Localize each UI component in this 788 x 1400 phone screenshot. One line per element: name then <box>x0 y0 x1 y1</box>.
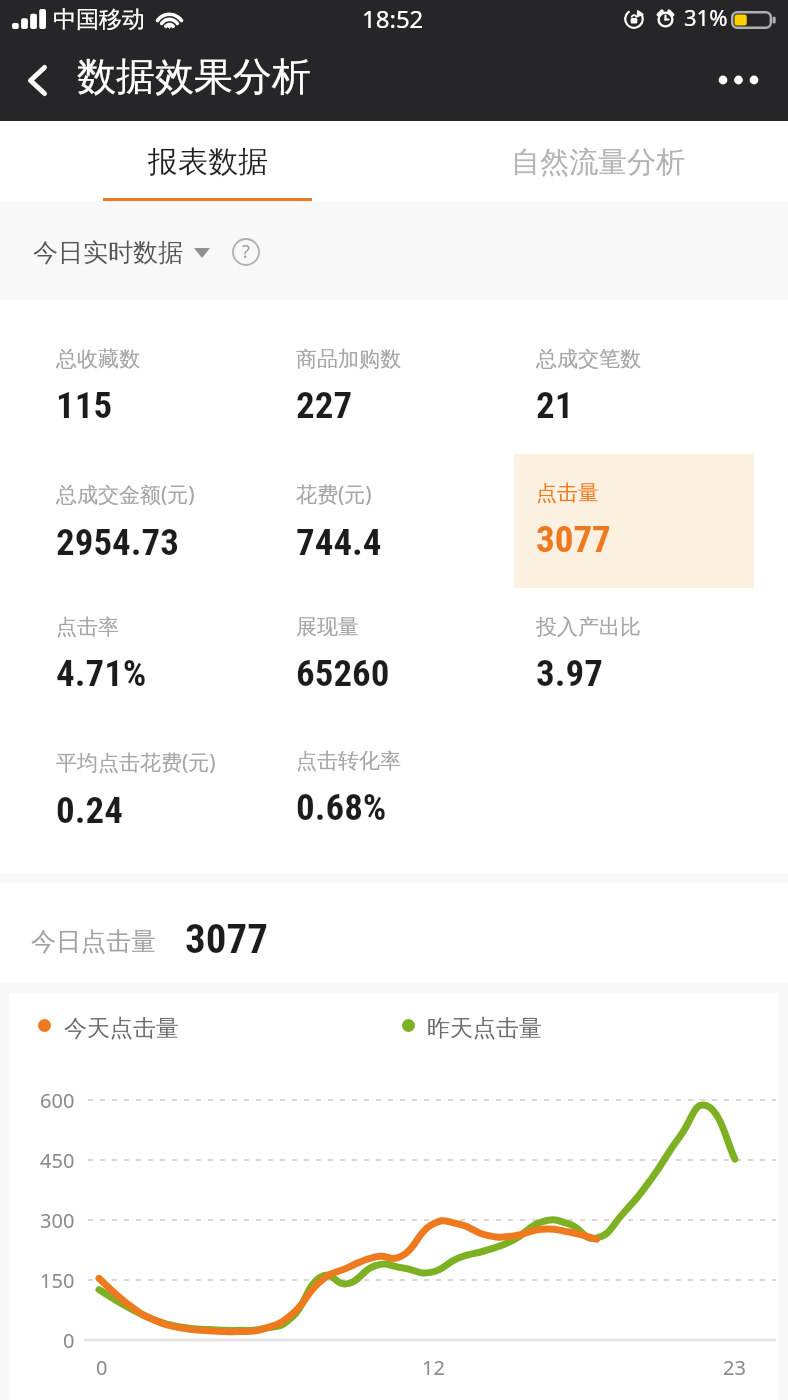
button[interactable]: 商品加购数 <box>274 320 514 454</box>
button[interactable]: 报表数据 <box>0 121 394 201</box>
staticText: 点击率 <box>56 614 119 640</box>
staticText: 自然流量分析 <box>511 144 685 181</box>
staticText: 总成交金额(元) <box>56 480 195 509</box>
staticText: 3.97 <box>536 652 603 695</box>
staticText: 投入产出比 <box>536 614 641 640</box>
staticText: 31% <box>684 2 728 32</box>
button[interactable]: Back <box>0 52 64 116</box>
staticText: 0.68% <box>296 786 387 829</box>
button[interactable]: 平均点击花费(元) <box>34 722 274 856</box>
staticText: 平均点击花费(元) <box>56 748 216 777</box>
staticText: 商品加购数 <box>296 346 401 372</box>
button[interactable]: 自然流量分析 <box>394 121 788 201</box>
staticText: 今日点击量 <box>31 926 156 957</box>
button[interactable]: 展现量 <box>274 588 514 722</box>
staticText: 点击量 <box>536 480 599 506</box>
staticText: 昨天点击量 <box>427 1014 542 1043</box>
staticText: 0 <box>96 1354 108 1381</box>
button[interactable]: 花费(元) <box>274 454 514 588</box>
staticText: 115 <box>56 384 113 427</box>
staticText: 数据效果分析 <box>77 52 311 101</box>
button[interactable]: 总成交笔数 <box>514 320 754 454</box>
staticText: 600 <box>40 1087 75 1114</box>
staticText: 3077 <box>185 915 268 963</box>
staticText: 0.24 <box>56 789 123 832</box>
staticText: 展现量 <box>296 614 359 640</box>
staticText: 23 <box>723 1354 746 1381</box>
button[interactable]: 今日实时数据 <box>33 237 210 268</box>
staticText: 21 <box>536 384 574 427</box>
button[interactable]: 点击量 <box>514 454 754 588</box>
staticText: 点击转化率 <box>296 748 401 774</box>
staticText: 2954.73 <box>56 521 179 564</box>
button[interactable]: 投入产出比 <box>514 588 754 722</box>
button[interactable]: More options <box>688 52 760 108</box>
staticText: 4.71% <box>56 652 147 695</box>
button[interactable]: 点击转化率 <box>274 722 514 856</box>
button[interactable]: 总成交金额(元) <box>34 454 274 588</box>
staticText: 65260 <box>296 652 390 695</box>
staticText: 300 <box>40 1207 75 1234</box>
staticText: 今日实时数据 <box>33 237 183 268</box>
staticText: 总成交笔数 <box>536 346 641 372</box>
staticText: 12 <box>422 1354 445 1381</box>
staticText: 3077 <box>536 518 611 561</box>
staticText: ? <box>242 239 250 264</box>
staticText: 450 <box>40 1147 75 1174</box>
staticText: 今天点击量 <box>64 1014 179 1043</box>
staticText: 18:52 <box>362 2 424 35</box>
staticText: 总收藏数 <box>56 346 140 372</box>
staticText: 中国移动 <box>53 5 145 34</box>
staticText: 744.4 <box>296 521 382 564</box>
staticText: 150 <box>40 1267 75 1294</box>
staticText: 花费(元) <box>296 480 372 509</box>
staticText: 报表数据 <box>148 143 268 181</box>
button[interactable]: 点击率 <box>34 588 274 722</box>
button[interactable]: 总收藏数 <box>34 320 274 454</box>
staticText: 227 <box>296 384 353 427</box>
button[interactable]: Help <box>232 238 260 266</box>
staticText: 0 <box>63 1327 75 1354</box>
